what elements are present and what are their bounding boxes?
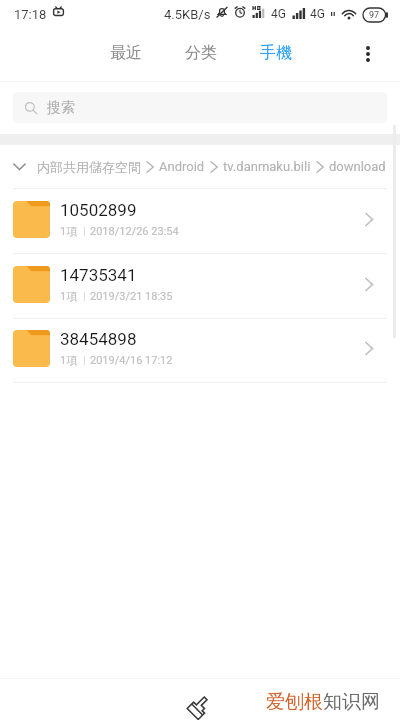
staticText: 17:18 <box>14 7 47 22</box>
staticText: 14735341 <box>60 265 137 285</box>
staticText: download <box>329 159 386 174</box>
staticText: 4.5KB/s <box>164 7 211 22</box>
staticText: 97 <box>369 10 380 21</box>
staticText: tv.danmaku.bili <box>223 159 311 174</box>
staticText: 内部共用儲存空間 <box>37 159 141 175</box>
staticText: 4G <box>310 7 325 21</box>
staticText: 搜索 <box>47 99 75 117</box>
button[interactable]: 手機 <box>252 30 300 75</box>
button[interactable]: 分类 <box>177 30 225 75</box>
staticText: 4G <box>271 7 286 21</box>
button[interactable]: 38454898 <box>0 318 400 383</box>
button[interactable]: 14735341 <box>0 254 400 319</box>
staticText: 手機 <box>260 43 292 63</box>
staticText: 38454898 <box>60 329 137 349</box>
staticText: 分类 <box>185 43 217 63</box>
button[interactable]: More options <box>355 30 381 78</box>
button[interactable]: 搜索 <box>13 92 387 123</box>
staticText: 1項 <box>60 353 78 367</box>
button[interactable]: Theme <box>178 685 218 720</box>
staticText: 2018/12/26 23:54 <box>90 225 179 238</box>
staticText: 1項 <box>60 224 78 238</box>
button[interactable]: 最近 <box>102 30 150 75</box>
staticText: 2019/3/21 18:35 <box>90 290 173 303</box>
staticText: 2019/4/16 17:12 <box>90 354 173 367</box>
staticText: 最近 <box>110 43 142 63</box>
staticText: 知识网 <box>323 690 380 714</box>
button[interactable]: Collapse path <box>7 155 31 179</box>
staticText: 1項 <box>60 289 78 303</box>
staticText: Android <box>159 159 205 174</box>
staticText: 爱刨根 <box>266 690 323 714</box>
button[interactable]: 10502899 <box>0 189 400 254</box>
staticText: 10502899 <box>60 200 137 220</box>
